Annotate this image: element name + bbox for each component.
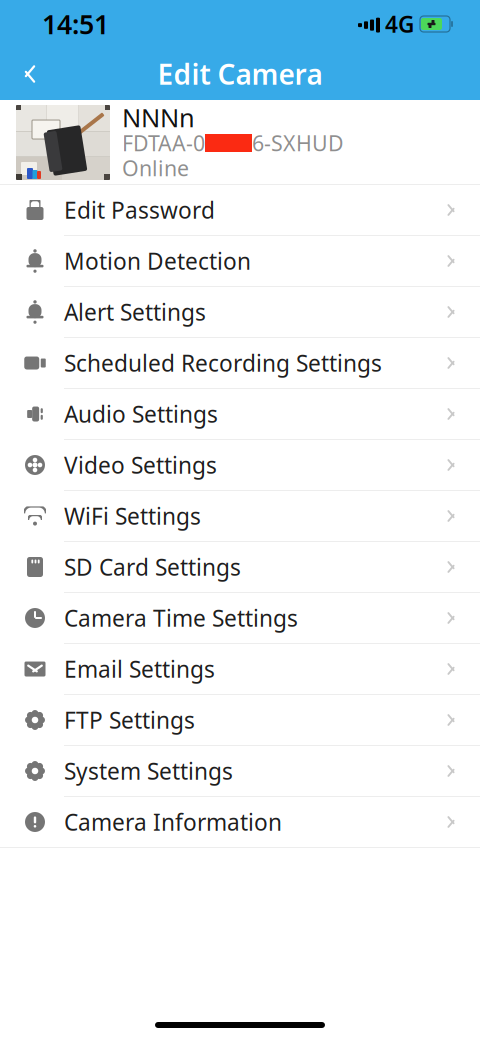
button[interactable]: NNNn	[0, 100, 480, 184]
staticText: Email Settings	[64, 654, 215, 684]
staticText: Video Settings	[64, 450, 217, 480]
button[interactable]: Scheduled Recording Settings	[0, 338, 480, 389]
staticText: 4G	[385, 9, 414, 39]
button[interactable]: FTP Settings	[0, 695, 480, 746]
button[interactable]: WiFi Settings	[0, 491, 480, 542]
staticText: WiFi Settings	[64, 501, 201, 531]
button[interactable]: Motion Detection	[0, 236, 480, 287]
staticText: NNNn	[122, 101, 195, 134]
staticText: Edit Password	[64, 195, 215, 225]
staticText: FDTAA-0	[122, 129, 205, 157]
button[interactable]: Camera Information	[0, 797, 480, 848]
button[interactable]: Email Settings	[0, 644, 480, 695]
staticText: Alert Settings	[64, 297, 206, 327]
staticText: 14:51	[42, 6, 109, 42]
staticText: FTP Settings	[64, 705, 195, 735]
button[interactable]: Back	[0, 48, 60, 100]
button[interactable]: SD Card Settings	[0, 542, 480, 593]
staticText: Camera Time Settings	[64, 603, 298, 633]
button[interactable]: Video Settings	[0, 440, 480, 491]
staticText: Edit Camera	[157, 55, 322, 93]
staticText: 6-SXHUD	[252, 129, 344, 157]
staticText: SD Card Settings	[64, 552, 241, 582]
staticText: Camera Information	[64, 807, 282, 837]
button[interactable]: Camera Time Settings	[0, 593, 480, 644]
button[interactable]: Audio Settings	[0, 389, 480, 440]
staticText: Scheduled Recording Settings	[64, 348, 382, 378]
staticText: System Settings	[64, 756, 233, 786]
staticText: Audio Settings	[64, 399, 218, 429]
button[interactable]: Edit Password	[0, 185, 480, 236]
staticText: Online	[122, 154, 189, 182]
staticText: Motion Detection	[64, 246, 251, 276]
button[interactable]: Alert Settings	[0, 287, 480, 338]
button[interactable]: System Settings	[0, 746, 480, 797]
